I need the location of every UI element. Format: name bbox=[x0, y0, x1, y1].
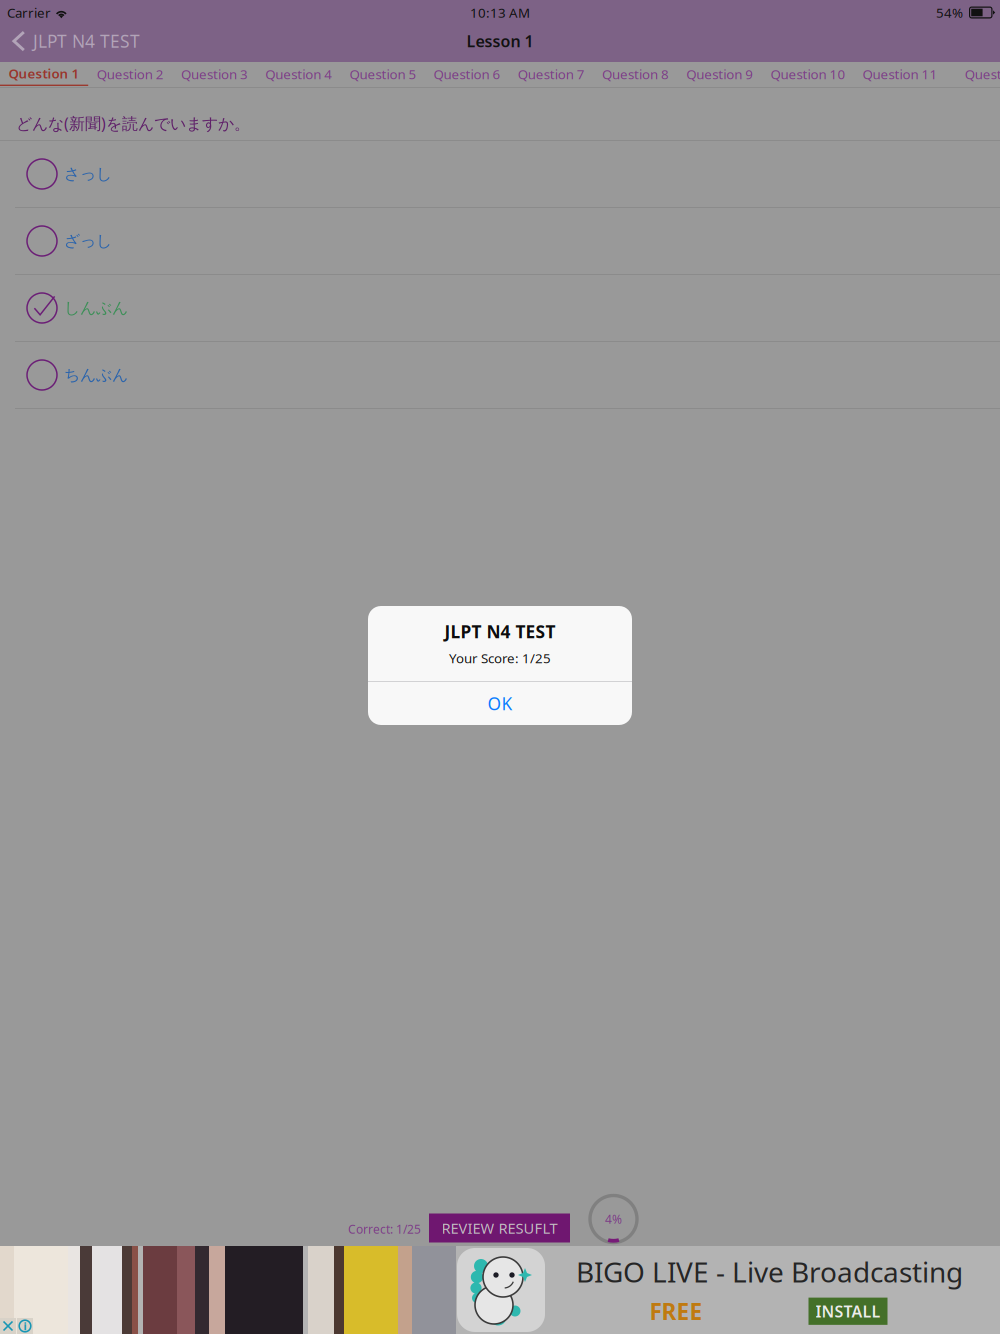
staticText: 4% bbox=[605, 1211, 622, 1227]
staticText: JLPT N4 TEST bbox=[33, 29, 140, 52]
staticText: Question 11 bbox=[863, 65, 938, 83]
button[interactable]: INSTALL bbox=[808, 1298, 887, 1325]
staticText: Question 1 bbox=[9, 64, 80, 82]
button[interactable]: Question 4 bbox=[257, 62, 341, 87]
staticText: 10:13 AM bbox=[470, 4, 530, 21]
button[interactable]: Question 3 bbox=[172, 62, 257, 87]
button[interactable]: Question 5 bbox=[341, 62, 425, 87]
staticText: JLPT N4 TEST bbox=[444, 620, 555, 643]
staticText: Questi bbox=[965, 65, 1000, 83]
button[interactable]: Question 7 bbox=[509, 62, 593, 87]
button[interactable]: Question 11 bbox=[854, 62, 946, 87]
button[interactable]: Question 1 bbox=[0, 62, 88, 87]
staticText: i bbox=[23, 1319, 26, 1333]
staticText: 54% bbox=[936, 4, 963, 21]
staticText: INSTALL bbox=[815, 1301, 880, 1322]
button[interactable]: Question 2 bbox=[88, 62, 172, 87]
button[interactable]: ちんぶん bbox=[0, 342, 1000, 408]
staticText: しんぶん bbox=[64, 298, 128, 318]
staticText: Question 10 bbox=[770, 65, 845, 83]
staticText: BIGO LIVE - Live Broadcasting bbox=[576, 1253, 963, 1290]
staticText: Carrier bbox=[7, 4, 51, 21]
button[interactable]: ざっし bbox=[0, 208, 1000, 274]
button[interactable]: JLPT N4 TEST bbox=[0, 25, 152, 62]
button[interactable]: さっし bbox=[0, 141, 1000, 207]
button[interactable]: Question 10 bbox=[762, 62, 854, 87]
staticText: ちんぶん bbox=[64, 365, 128, 385]
staticText: OK bbox=[487, 692, 512, 715]
staticText: Question 2 bbox=[97, 65, 164, 83]
staticText: Question 3 bbox=[181, 65, 248, 83]
staticText: ざっし bbox=[64, 231, 112, 251]
staticText: Correct: 1/25 bbox=[348, 1221, 421, 1237]
button[interactable]: Questi bbox=[946, 62, 1000, 87]
staticText: REVIEW RESUFLT bbox=[441, 1218, 557, 1238]
staticText: FREE bbox=[649, 1296, 702, 1326]
staticText: Question 6 bbox=[434, 65, 501, 83]
button[interactable]: REVIEW RESUFLT bbox=[429, 1213, 570, 1242]
staticText: さっし bbox=[64, 164, 112, 184]
button[interactable]: しんぶん bbox=[0, 275, 1000, 341]
button[interactable]: Question 8 bbox=[593, 62, 678, 87]
staticText: Question 4 bbox=[265, 65, 332, 83]
staticText: Lesson 1 bbox=[466, 30, 533, 52]
staticText: Question 7 bbox=[518, 65, 585, 83]
button[interactable]: Question 6 bbox=[425, 62, 509, 87]
button[interactable]: Question 9 bbox=[678, 62, 762, 87]
staticText: どんな(新聞)を読んでいますか。 bbox=[16, 113, 250, 134]
staticText: Question 8 bbox=[602, 65, 669, 83]
button[interactable]: OK bbox=[368, 682, 632, 725]
staticText: Question 5 bbox=[349, 65, 416, 83]
staticText: Your Score: 1/25 bbox=[449, 649, 551, 667]
staticText: Question 9 bbox=[686, 65, 753, 83]
